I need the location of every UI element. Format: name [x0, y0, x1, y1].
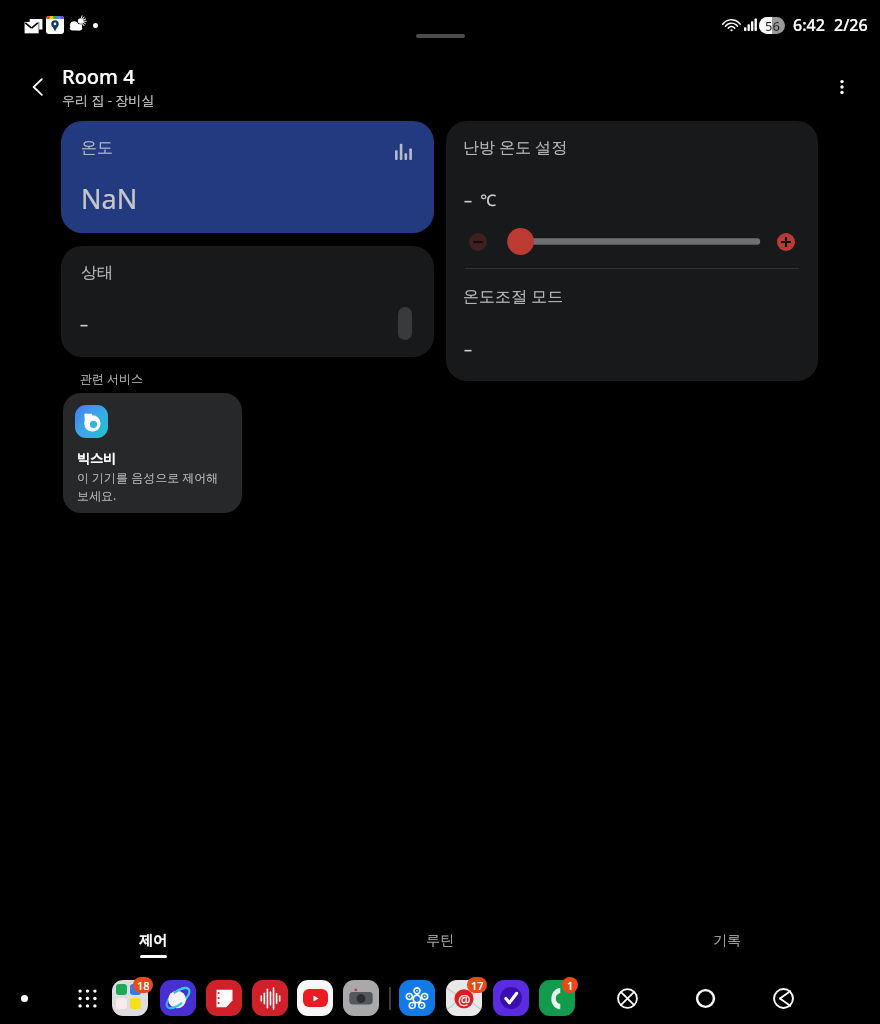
- button[interactable]: 상태: [61, 246, 434, 357]
- button[interactable]: 루틴: [320, 932, 560, 976]
- staticText: –: [464, 338, 473, 360]
- button[interactable]: App: [206, 980, 242, 1016]
- staticText: 관련 서비스: [80, 370, 144, 386]
- button[interactable]: Increase temperature: [765, 221, 807, 263]
- staticText: @: [458, 990, 471, 1009]
- staticText: 루틴: [426, 932, 454, 950]
- button[interactable]: App: [343, 980, 379, 1016]
- staticText: –: [80, 313, 89, 335]
- staticText: 6:42: [793, 14, 825, 36]
- staticText: 난방 온도 설정: [463, 136, 568, 158]
- staticText: 온도조절 모드: [463, 285, 564, 307]
- button[interactable]: More options: [818, 63, 866, 111]
- staticText: 우리 집 - 장비실: [62, 91, 155, 109]
- button[interactable]: 빅스비: [63, 393, 242, 513]
- staticText: 온도: [81, 138, 113, 158]
- button[interactable]: Toggle switch: [398, 307, 412, 340]
- button[interactable]: 제어: [33, 932, 273, 976]
- staticText: 56: [765, 17, 780, 34]
- staticText: – ℃: [464, 189, 497, 211]
- button[interactable]: Home: [687, 980, 723, 1016]
- staticText: 2/26: [834, 14, 868, 36]
- button[interactable]: 기록: [607, 932, 847, 976]
- button[interactable]: App: [160, 980, 196, 1016]
- button[interactable]: Recents: [609, 980, 645, 1016]
- button[interactable]: App: [493, 980, 529, 1016]
- button[interactable]: Decrease temperature: [457, 221, 499, 263]
- button[interactable]: App: [112, 980, 148, 1016]
- button[interactable]: 온도: [61, 121, 434, 233]
- button[interactable]: Back: [14, 63, 62, 111]
- button[interactable]: Back: [765, 980, 801, 1016]
- staticText: 1: [567, 978, 574, 993]
- staticText: 제어: [139, 932, 167, 950]
- button[interactable]: App: [539, 980, 575, 1016]
- staticText: 빅스비: [77, 450, 116, 466]
- staticText: 상태: [81, 263, 113, 283]
- staticText: NaN: [81, 180, 138, 217]
- staticText: 17: [471, 978, 484, 993]
- button[interactable]: App: [399, 980, 435, 1016]
- button[interactable]: App: [252, 980, 288, 1016]
- staticText: 이 기기를 음성으로 제어해 보세요.: [77, 469, 223, 504]
- button[interactable]: Apps: [69, 980, 105, 1016]
- staticText: 기록: [713, 932, 741, 950]
- button[interactable]: App: [297, 980, 333, 1016]
- staticText: 18: [137, 978, 150, 993]
- button[interactable]: App: [446, 980, 482, 1016]
- staticText: Room 4: [62, 63, 135, 90]
